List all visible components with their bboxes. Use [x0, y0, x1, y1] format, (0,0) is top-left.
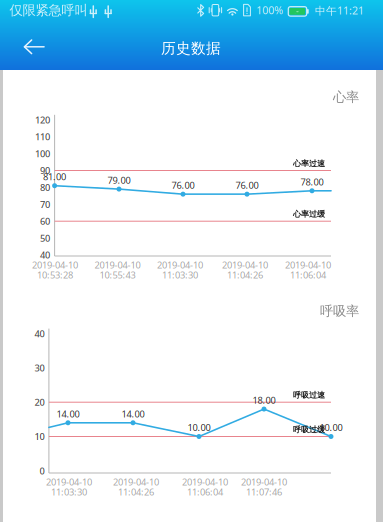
staticText: 2019-04-10	[182, 476, 228, 488]
staticText: 81.00	[43, 170, 66, 183]
staticText: 呼吸过速	[293, 390, 325, 400]
staticText: 心率过速	[293, 159, 325, 168]
staticText: 2019-04-10	[241, 476, 287, 488]
staticText: 20	[34, 396, 44, 408]
button[interactable]: Back	[0, 0, 383, 522]
staticText: 仅限紧急呼叫	[10, 2, 88, 18]
staticText: 10.00	[319, 421, 342, 434]
staticText: 心率过缓	[293, 209, 325, 219]
staticText: 心率	[333, 89, 359, 105]
staticText: 历史数据	[161, 39, 221, 57]
staticText: 40	[40, 249, 50, 261]
staticText: 11:03:30	[51, 486, 87, 498]
staticText: 2019-04-10	[285, 259, 331, 271]
staticText: 11:06:04	[290, 269, 326, 281]
staticText: 11:04:26	[118, 486, 154, 498]
staticText: 110	[35, 130, 50, 143]
staticText: 2019-04-10	[113, 476, 159, 488]
staticText: 2019-04-10	[32, 259, 78, 271]
staticText: 14.00	[56, 408, 79, 420]
staticText: 80	[40, 181, 50, 194]
staticText: 呼吸率	[320, 303, 359, 319]
staticText: 50	[40, 232, 50, 244]
staticText: 76.00	[171, 179, 194, 191]
staticText: 10:55:43	[99, 269, 135, 281]
staticText: 2019-04-10	[157, 259, 203, 271]
staticText: 11:07:46	[246, 486, 282, 498]
staticText: 10	[34, 430, 44, 443]
staticText: 10.00	[187, 421, 210, 434]
staticText: 2019-04-10	[222, 259, 268, 271]
staticText: 30	[34, 362, 44, 374]
staticText: 呼吸过缓	[293, 425, 325, 434]
staticText: 10:53:28	[37, 269, 73, 281]
staticText: 100	[35, 147, 50, 160]
staticText: 2019-04-10	[94, 259, 140, 271]
staticText: 60	[40, 215, 50, 227]
staticText: 78.00	[300, 176, 323, 188]
staticText: 14.00	[121, 408, 144, 420]
staticText: 18.00	[252, 394, 275, 406]
staticText: 11:03:30	[162, 269, 198, 281]
staticText: 70	[40, 198, 50, 210]
staticText: 76.00	[235, 179, 258, 191]
staticText: 79.00	[107, 174, 130, 186]
staticText: 0	[39, 465, 44, 477]
staticText: 11:04:26	[227, 269, 263, 281]
staticText: 100%	[256, 3, 283, 17]
staticText: 90	[40, 164, 50, 177]
staticText: 中午11:21	[315, 3, 364, 17]
staticText: 40	[34, 327, 44, 340]
staticText: 120	[35, 114, 50, 126]
staticText: 11:06:04	[187, 486, 223, 498]
staticText: 2019-04-10	[46, 476, 92, 488]
